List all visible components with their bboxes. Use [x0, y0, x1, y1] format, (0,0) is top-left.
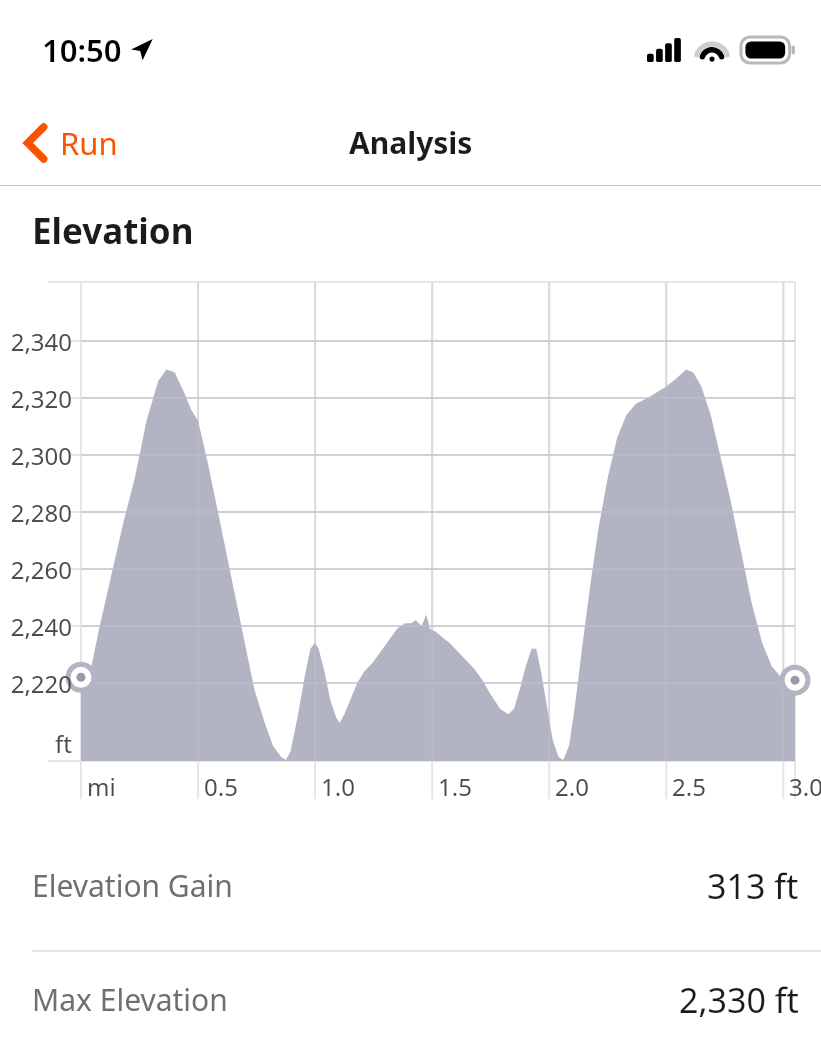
staticText: mi — [87, 770, 116, 803]
staticText: 2,300 — [0, 439, 72, 472]
staticText: 1.0 — [321, 770, 355, 803]
staticText: ft — [0, 727, 72, 760]
button[interactable]: Elevation Gain — [0, 821, 821, 950]
staticText: 2.5 — [672, 770, 706, 803]
staticText: 1.5 — [438, 770, 472, 803]
button[interactable]: Back — [0, 114, 134, 172]
staticText: 2,260 — [0, 553, 72, 586]
staticText: 2,320 — [0, 382, 72, 415]
staticText: 2,240 — [0, 610, 72, 643]
staticText: 10:50 — [42, 29, 122, 71]
staticText: Analysis — [349, 122, 473, 163]
staticText: Elevation Gain — [32, 865, 233, 906]
button[interactable]: Max Elevation — [0, 952, 821, 1047]
staticText: 313 ft — [707, 863, 799, 909]
staticText: Elevation — [32, 207, 194, 255]
staticText: 3.0 — [789, 770, 821, 803]
staticText: 2,280 — [0, 496, 72, 529]
staticText: 2,330 ft — [679, 977, 799, 1023]
staticText: 2.0 — [555, 770, 589, 803]
staticText: Run — [60, 122, 118, 164]
staticText: 0.5 — [204, 770, 238, 803]
staticText: 2,340 — [0, 325, 72, 358]
other: Back — [24, 123, 48, 163]
staticText: 2,220 — [0, 667, 72, 700]
staticText: Max Elevation — [32, 979, 228, 1020]
